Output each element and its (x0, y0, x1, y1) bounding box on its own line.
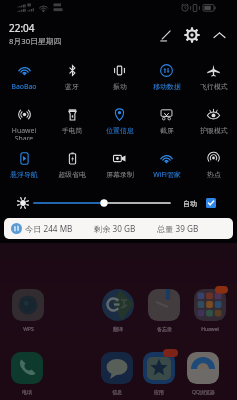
button[interactable]: 热点 (190, 140, 237, 184)
staticText: 飞行模式 (197, 82, 231, 91)
staticText: 位置信息 (103, 126, 137, 135)
staticText: 悬浮导航 (7, 170, 41, 179)
staticText: BaoBao (7, 82, 41, 91)
button[interactable]: Collapse panel (207, 23, 231, 47)
staticText: 电话 (22, 389, 32, 395)
staticText: 应用 (154, 389, 164, 395)
staticText: 8月30日星期四 (9, 36, 62, 47)
button[interactable]: Settings (180, 23, 204, 47)
staticText: Huawei Share (7, 126, 41, 140)
staticText: Huawei (201, 326, 219, 333)
button[interactable]: 振动 (96, 52, 143, 96)
button[interactable]: 悬浮导航 (0, 140, 48, 184)
button[interactable]: 飞行模式 (190, 52, 237, 96)
staticText: 总量 39 GB (157, 223, 199, 234)
staticText: QQ浏览器 (192, 389, 215, 396)
button[interactable]: Edit quick settings (153, 23, 177, 47)
staticText: 蓝牙 (55, 82, 89, 91)
button[interactable]: 手电筒 (48, 96, 96, 140)
staticText: 热点 (197, 170, 231, 179)
staticText: 自动 (183, 199, 197, 208)
staticText: 移动数据 (150, 82, 184, 91)
staticText: 今日 244 MB (25, 223, 73, 234)
button[interactable]: 移动数据 (143, 52, 190, 96)
button[interactable]: 位置信息 (96, 96, 143, 140)
button[interactable]: WiFi管家 (143, 140, 190, 184)
staticText: 备忘录 (157, 326, 172, 332)
staticText: WiFi管家 (150, 170, 184, 179)
button[interactable]: 屏幕录制 (96, 140, 143, 184)
button[interactable]: BaoBao (0, 52, 48, 96)
staticText: 翻译 (113, 326, 123, 332)
button[interactable]: 截屏 (143, 96, 190, 140)
button[interactable]: 护眼模式 (190, 96, 237, 140)
button[interactable]: 自动 (183, 198, 216, 208)
button[interactable]: 蓝牙 (48, 52, 96, 96)
staticText: 22:04 (9, 21, 35, 35)
staticText: 剩余 30 GB (94, 223, 136, 234)
staticText: 屏幕录制 (103, 170, 137, 179)
staticText: 超级省电 (55, 170, 89, 179)
staticText: 护眼模式 (197, 126, 231, 135)
staticText: WPS (23, 326, 34, 333)
button[interactable]: 今日 244 MB (4, 218, 233, 239)
button[interactable]: 超级省电 (48, 140, 96, 184)
staticText: 振动 (103, 82, 137, 91)
staticText: 截屏 (150, 126, 184, 135)
staticText: 手电筒 (55, 126, 89, 135)
button[interactable]: Huawei Share (0, 96, 48, 140)
staticText: 信息 (112, 389, 122, 395)
